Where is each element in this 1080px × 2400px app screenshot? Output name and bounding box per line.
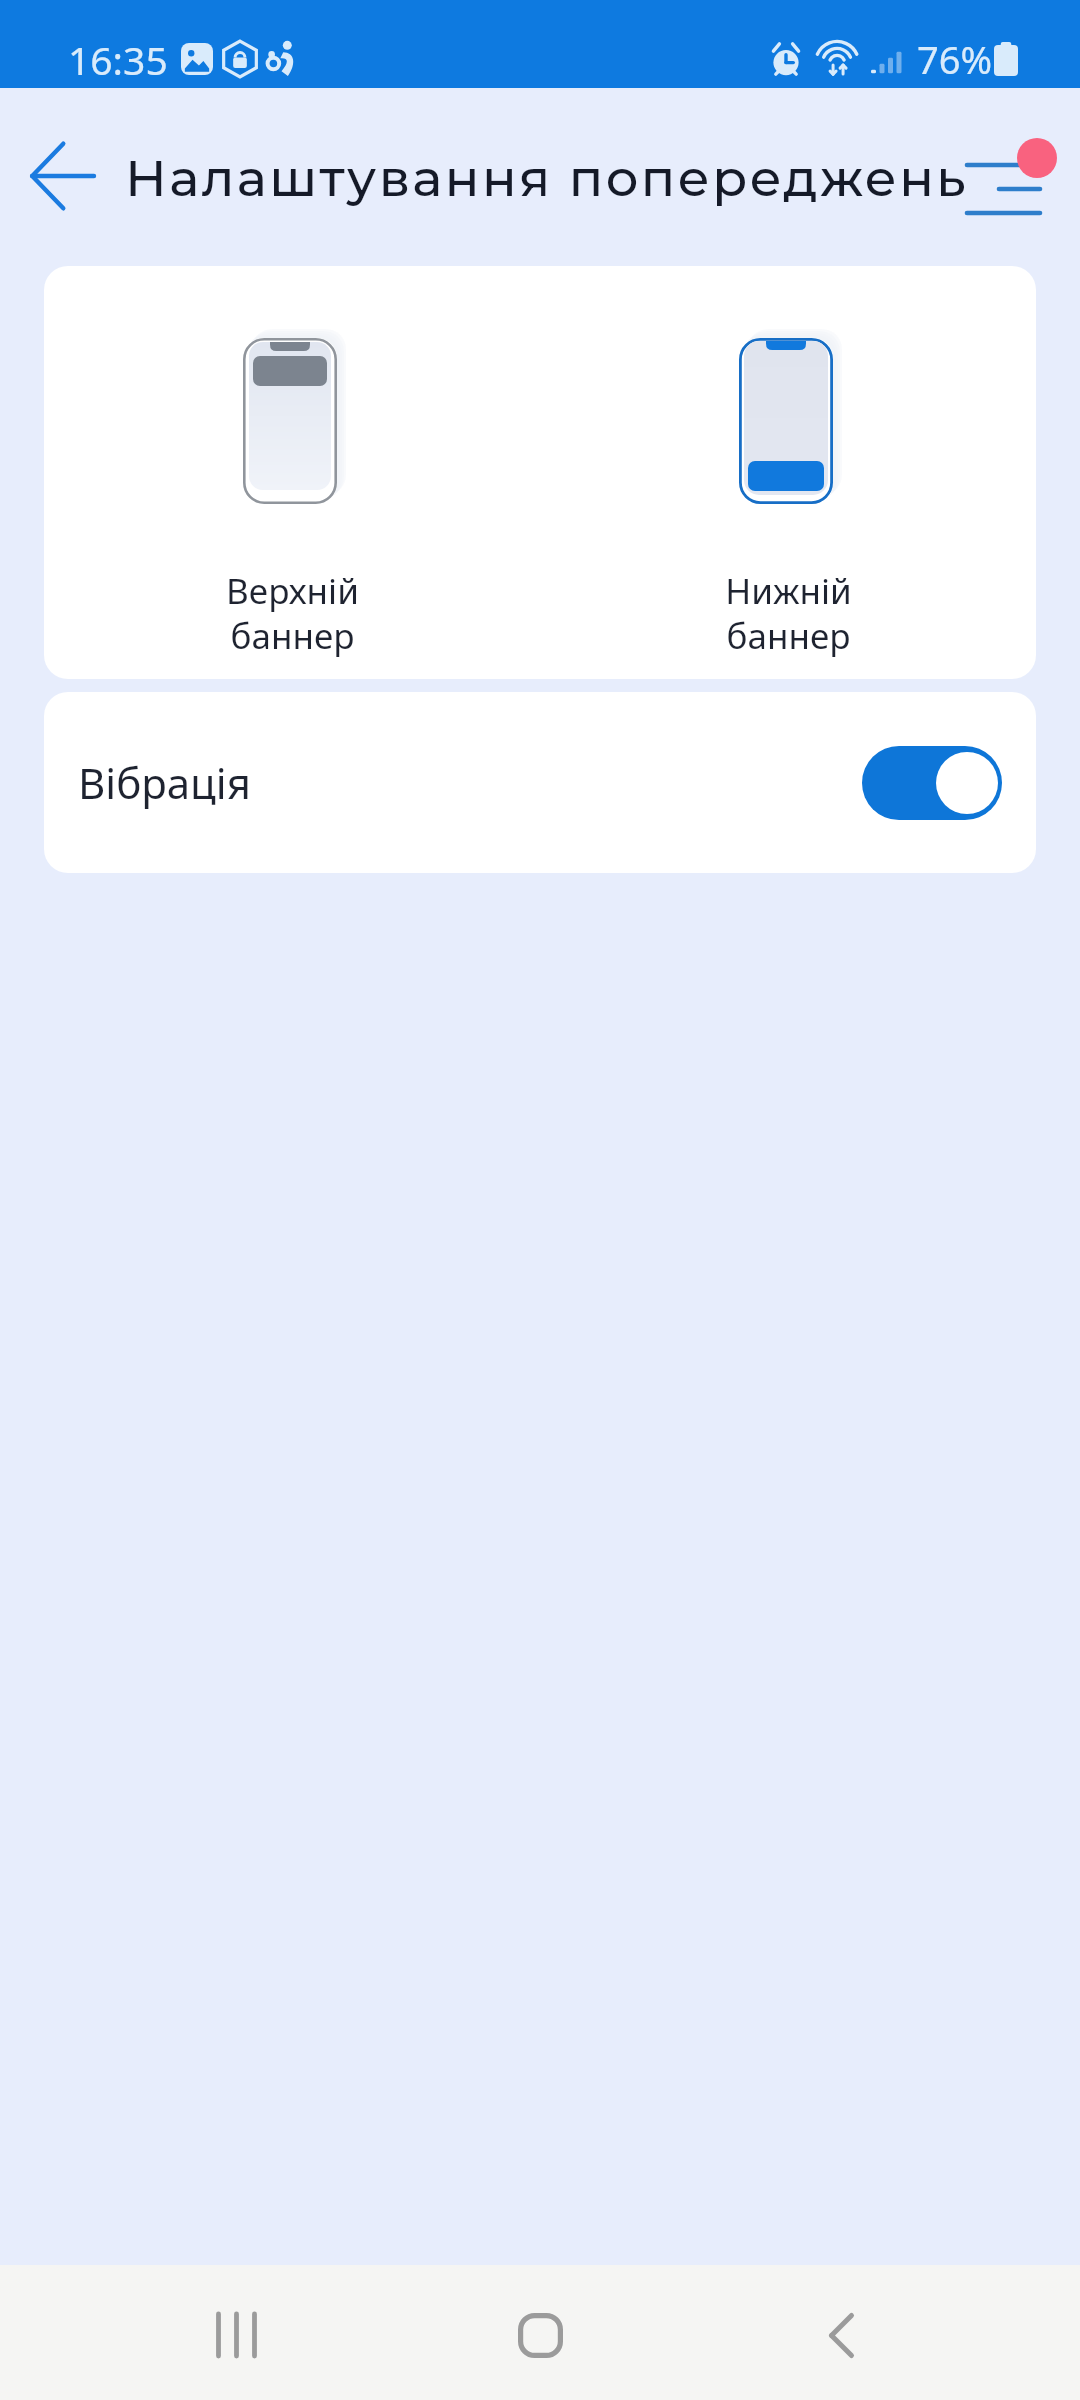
button[interactable]: Назад	[786, 2280, 896, 2390]
button[interactable]: Назад	[12, 126, 112, 226]
button[interactable]: Вібрація	[44, 692, 1036, 873]
button[interactable]: Головна	[485, 2280, 595, 2390]
button[interactable]	[862, 746, 1002, 820]
staticText: Вібрація	[78, 754, 251, 811]
button[interactable]: Меню	[947, 117, 1067, 237]
button[interactable]: Нещодавні	[182, 2280, 292, 2390]
staticText: 76%	[917, 33, 993, 85]
button[interactable]: Нижній баннер	[540, 266, 1036, 679]
staticText: 16:35	[68, 33, 168, 86]
staticText: Верхній баннер	[226, 567, 359, 660]
staticText: Нижній баннер	[725, 567, 852, 660]
button[interactable]: Верхній баннер	[44, 266, 540, 679]
staticText: Налаштування попереджень	[125, 147, 969, 209]
